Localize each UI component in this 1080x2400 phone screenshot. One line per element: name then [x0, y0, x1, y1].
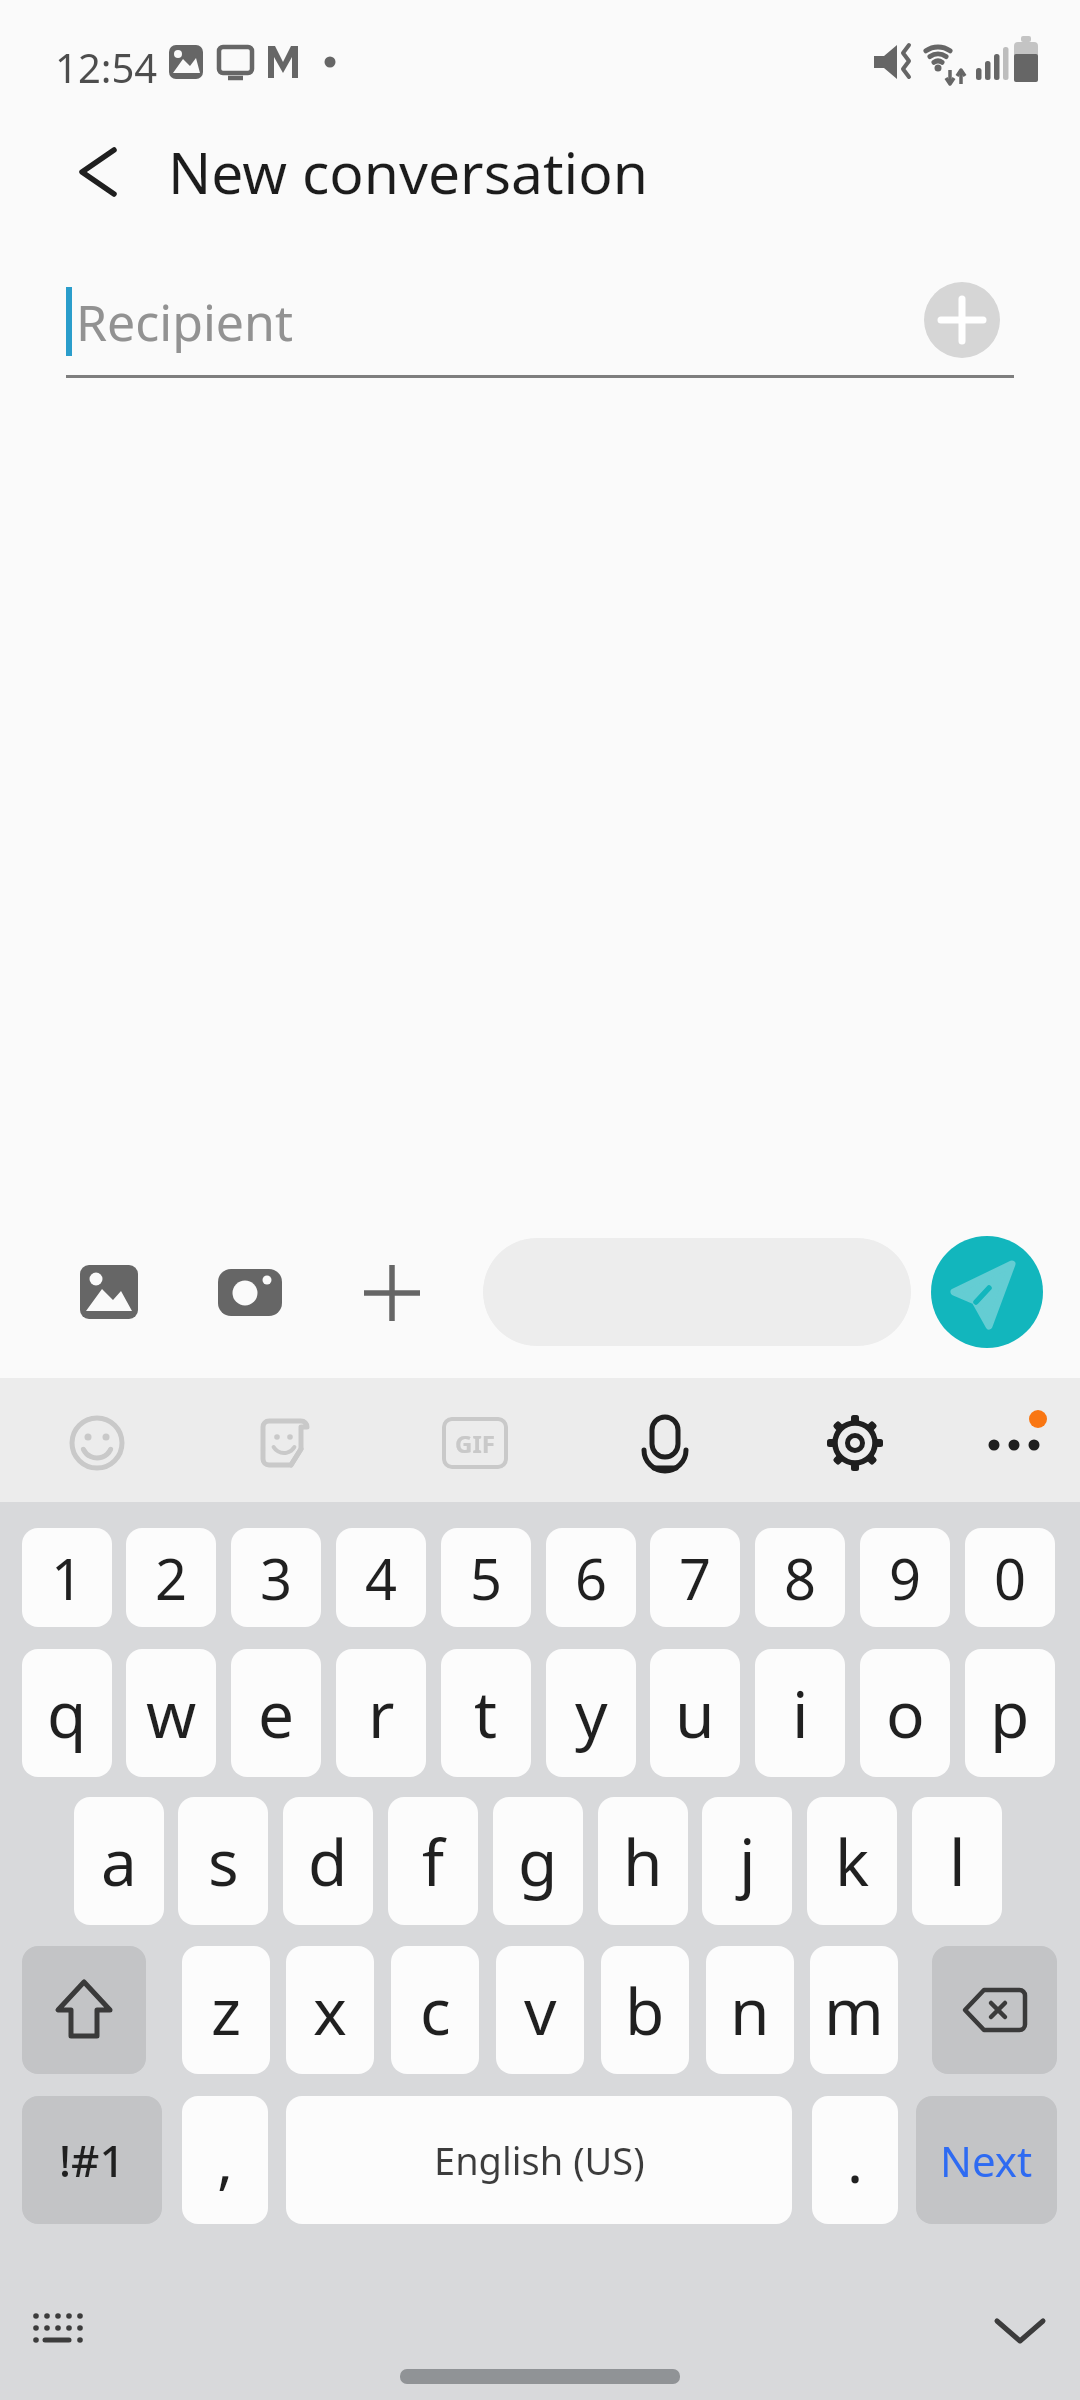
staticText: g — [518, 1818, 558, 1905]
button[interactable]: i — [755, 1649, 845, 1777]
staticText: t — [474, 1670, 498, 1757]
button[interactable]: Next — [916, 2096, 1057, 2224]
button[interactable] — [49, 1395, 145, 1491]
staticText: 12:54 — [55, 40, 158, 94]
button[interactable] — [976, 2296, 1064, 2368]
staticText: z — [211, 1967, 242, 2054]
button[interactable]: q — [22, 1649, 112, 1777]
button[interactable] — [237, 1395, 333, 1491]
button[interactable]: 3 — [231, 1528, 321, 1627]
button[interactable]: 7 — [650, 1528, 740, 1627]
staticText: v — [524, 1967, 557, 2054]
button[interactable]: a — [74, 1797, 164, 1925]
button[interactable] — [924, 282, 1000, 358]
button[interactable]: English (US) — [286, 2096, 792, 2224]
staticText: f — [422, 1818, 445, 1905]
staticText: 1 — [51, 1540, 84, 1616]
button[interactable]: s — [178, 1797, 268, 1925]
staticText: New conversation — [168, 133, 648, 211]
button[interactable]: j — [702, 1797, 792, 1925]
button[interactable] — [932, 1946, 1057, 2074]
button[interactable] — [931, 1236, 1043, 1348]
staticText: q — [47, 1670, 87, 1757]
button[interactable]: GIF — [427, 1395, 523, 1491]
button[interactable]: g — [493, 1797, 583, 1925]
button[interactable]: . — [812, 2096, 898, 2224]
staticText: . — [847, 2119, 864, 2201]
staticText: i — [792, 1670, 809, 1757]
button[interactable]: 6 — [546, 1528, 636, 1627]
staticText: r — [368, 1670, 395, 1757]
staticText: Recipient — [76, 288, 293, 356]
staticText: !#1 — [59, 2130, 125, 2190]
button[interactable]: 8 — [755, 1528, 845, 1627]
staticText: s — [208, 1818, 239, 1905]
staticText: 6 — [575, 1540, 608, 1616]
button[interactable] — [57, 132, 137, 212]
staticText: e — [258, 1670, 295, 1757]
button[interactable]: 4 — [336, 1528, 426, 1627]
button[interactable]: !#1 — [22, 2096, 162, 2224]
button[interactable] — [617, 1395, 713, 1491]
button[interactable]: z — [182, 1946, 270, 2074]
staticText: 5 — [470, 1540, 503, 1616]
staticText: o — [886, 1670, 925, 1757]
staticText: x — [313, 1967, 347, 2054]
button[interactable]: t — [441, 1649, 531, 1777]
staticText: , — [217, 2119, 234, 2201]
button[interactable] — [206, 1248, 294, 1336]
button[interactable]: d — [283, 1797, 373, 1925]
button[interactable]: k — [807, 1797, 897, 1925]
button[interactable]: u — [650, 1649, 740, 1777]
staticText: Next — [940, 2132, 1033, 2189]
button[interactable]: 0 — [965, 1528, 1055, 1627]
button[interactable]: w — [126, 1649, 216, 1777]
staticText: a — [101, 1818, 137, 1905]
staticText: c — [420, 1967, 451, 2054]
button[interactable]: , — [182, 2096, 268, 2224]
staticText: k — [835, 1818, 870, 1905]
staticText: 7 — [679, 1540, 712, 1616]
button[interactable]: n — [706, 1946, 794, 2074]
button[interactable]: c — [391, 1946, 479, 2074]
staticText: n — [730, 1967, 770, 2054]
staticText: b — [625, 1967, 665, 2054]
button[interactable]: b — [601, 1946, 689, 2074]
button[interactable]: 1 — [22, 1528, 112, 1627]
button[interactable]: 9 — [860, 1528, 950, 1627]
staticText: p — [990, 1670, 1030, 1757]
button[interactable]: o — [860, 1649, 950, 1777]
staticText: h — [623, 1818, 663, 1905]
button[interactable]: v — [496, 1946, 584, 2074]
staticText: GIF — [455, 1427, 495, 1460]
button[interactable]: 5 — [441, 1528, 531, 1627]
staticText: d — [308, 1818, 348, 1905]
button[interactable]: f — [388, 1797, 478, 1925]
button[interactable]: 2 — [126, 1528, 216, 1627]
button[interactable] — [807, 1395, 903, 1491]
button[interactable] — [22, 1946, 146, 2074]
staticText: 0 — [994, 1540, 1027, 1616]
staticText: j — [739, 1818, 756, 1905]
staticText: English (US) — [434, 2134, 645, 2186]
staticText: u — [675, 1670, 715, 1757]
button[interactable] — [20, 2296, 96, 2368]
button[interactable] — [348, 1249, 436, 1337]
staticText: 8 — [784, 1540, 817, 1616]
button[interactable] — [65, 1248, 153, 1336]
staticText: 3 — [260, 1540, 293, 1616]
staticText: 2 — [155, 1540, 188, 1616]
button[interactable]: x — [286, 1946, 374, 2074]
button[interactable]: l — [912, 1797, 1002, 1925]
button[interactable]: r — [336, 1649, 426, 1777]
button[interactable]: y — [546, 1649, 636, 1777]
button[interactable]: p — [965, 1649, 1055, 1777]
button[interactable]: e — [231, 1649, 321, 1777]
button[interactable]: m — [810, 1946, 898, 2074]
staticText: m — [824, 1967, 884, 2054]
staticText: 9 — [889, 1540, 922, 1616]
staticText: l — [949, 1818, 966, 1905]
button[interactable] — [966, 1395, 1062, 1491]
button[interactable]: h — [598, 1797, 688, 1925]
